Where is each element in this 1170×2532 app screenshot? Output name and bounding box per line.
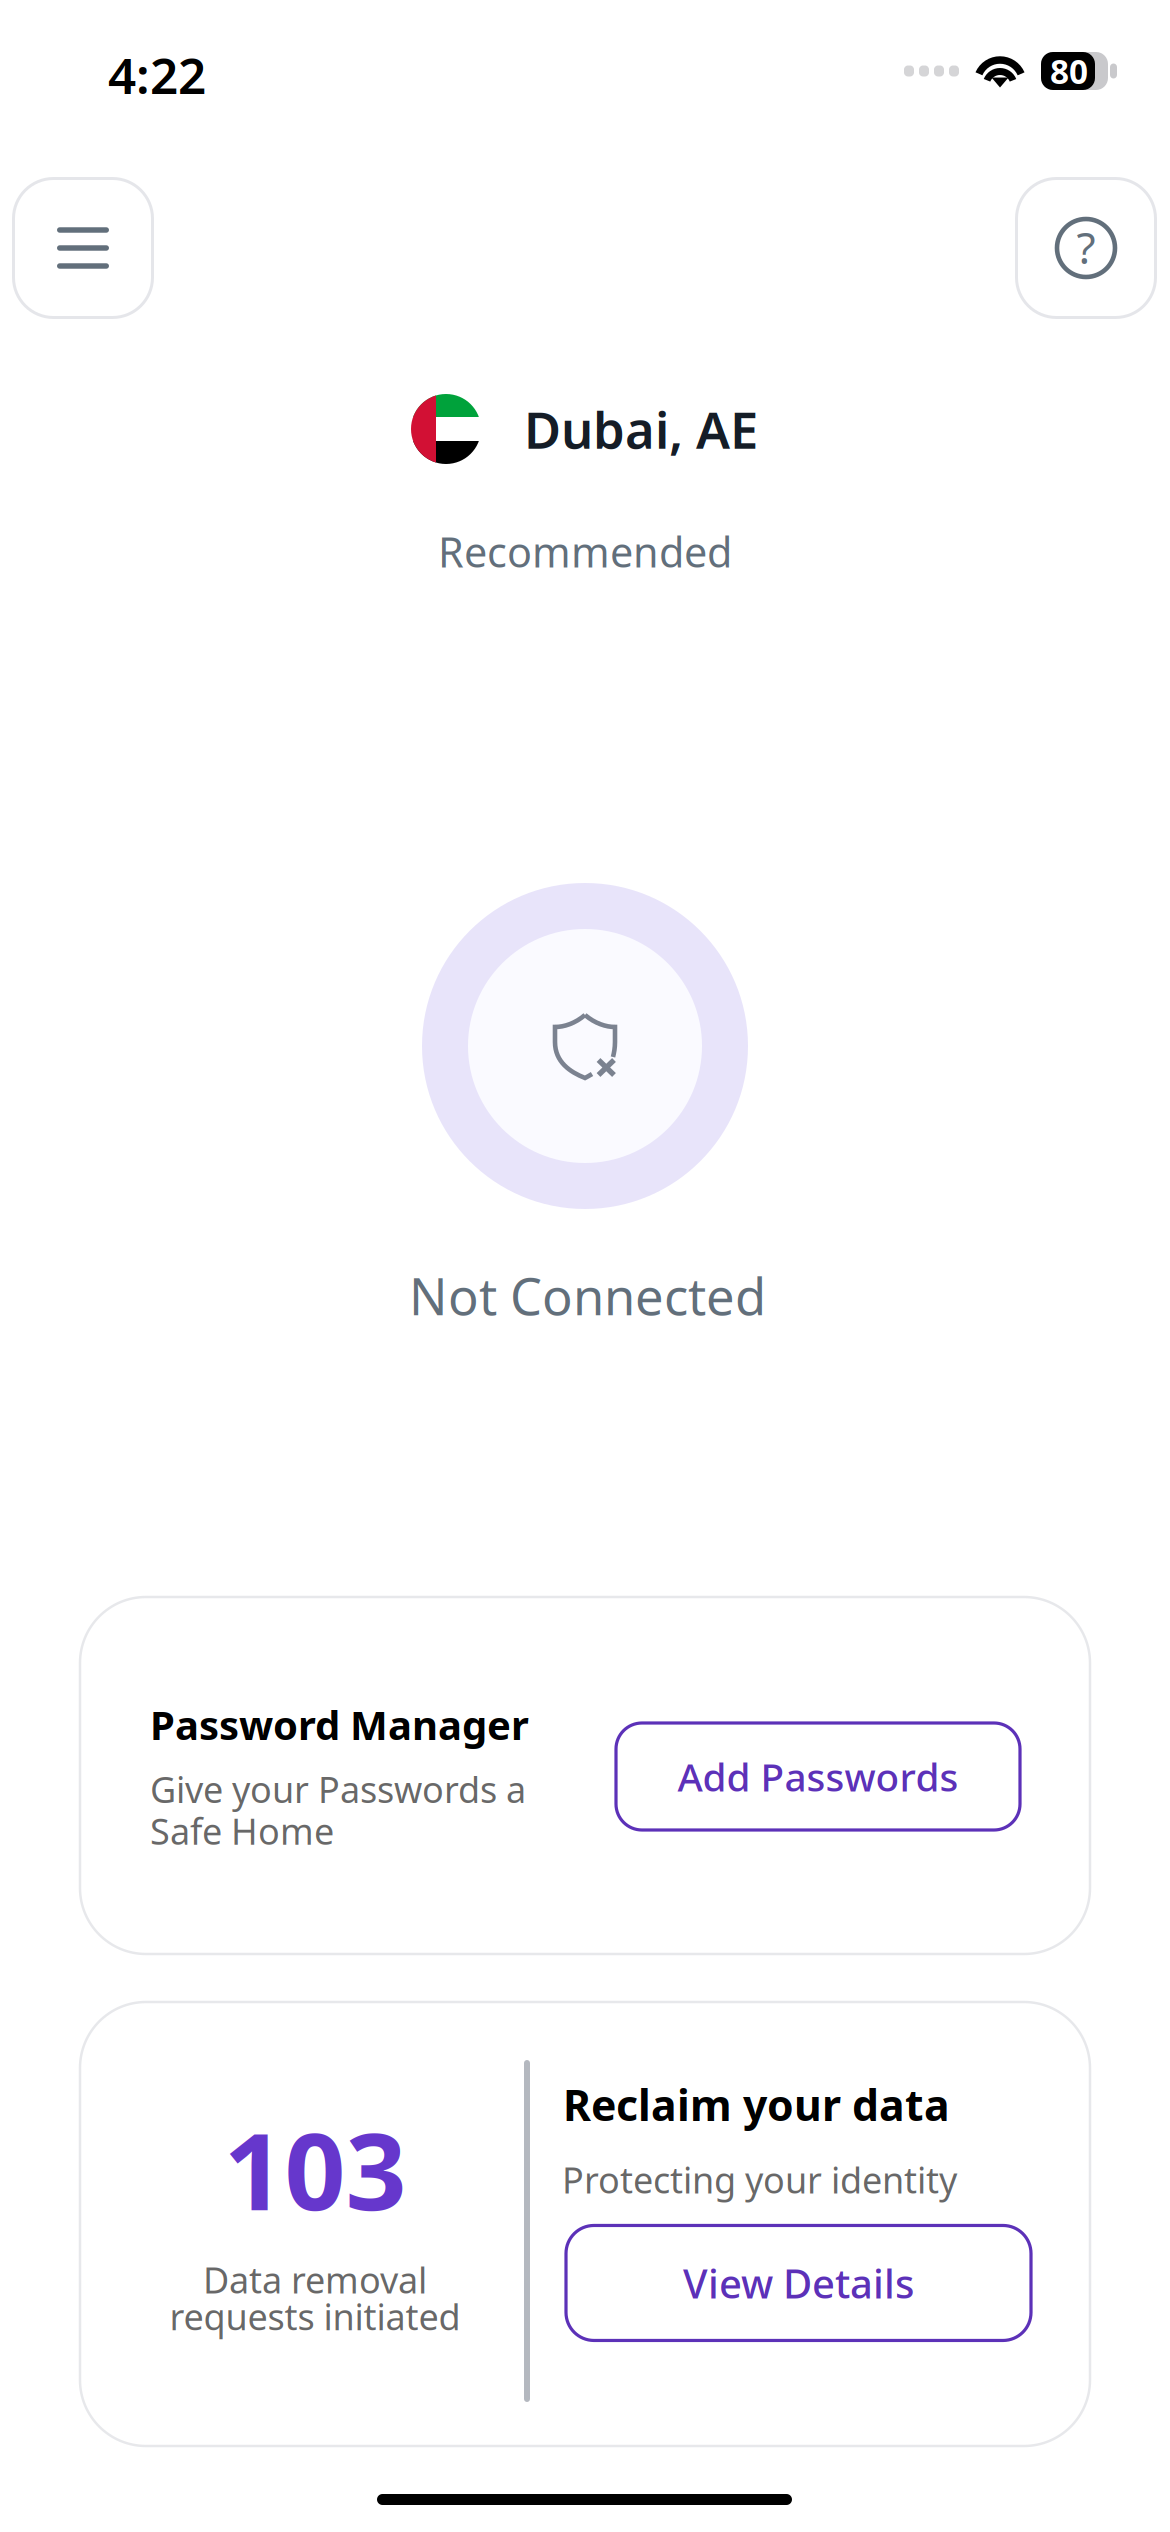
staticText: Password Manager [150,1698,529,1751]
button[interactable]: View Details [566,2225,1031,2340]
staticText: Data removal [203,2256,427,2303]
staticText: requests initiated [169,2292,460,2340]
staticText: Reclaim your data [563,2076,950,2133]
staticText: Add Passwords [677,1751,958,1802]
staticText: View Details [683,2256,914,2309]
staticText: Safe Home [150,1807,334,1855]
staticText: 80 [1050,49,1088,93]
staticText: Protecting your identity [562,2156,957,2203]
button[interactable]: Add Passwords [616,1723,1020,1830]
staticText: 103 [223,2098,406,2240]
staticText: 4:22 [108,42,206,107]
staticText: Give your Passwords a [150,1765,526,1813]
staticText: ? [1076,218,1095,276]
staticText: Recommended [438,524,732,579]
staticText: Not Connected [409,1262,766,1329]
button[interactable]: Help [1015,177,1157,319]
button[interactable]: Dubai, AE [411,393,758,465]
button[interactable]: Menu [12,177,154,319]
staticText: Dubai, AE [524,395,758,463]
